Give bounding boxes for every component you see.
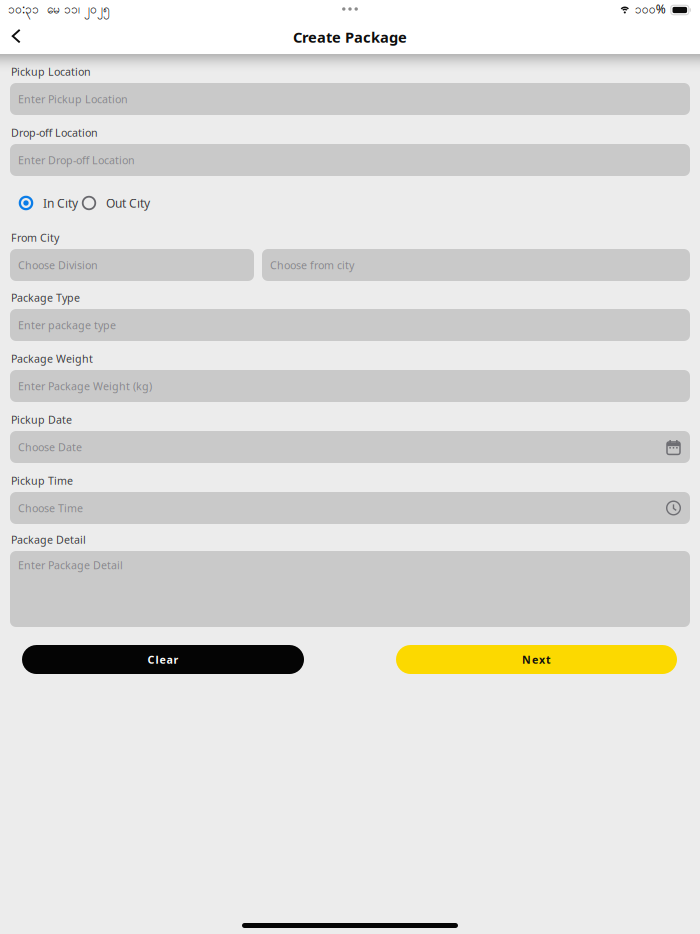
staticText: Choose Division: [18, 258, 98, 272]
staticText: In City: [43, 195, 78, 211]
staticText: Enter Package Detail: [18, 558, 123, 572]
staticText: Clear: [147, 652, 178, 667]
staticText: Enter Drop-off Location: [18, 153, 135, 167]
button[interactable]: Enter Drop-off Location: [10, 144, 690, 176]
staticText: ၁၀:၃၁ မေ ၁၁၊ ၂၀၂၅: [8, 1, 110, 19]
staticText: Enter Pickup Location: [18, 92, 128, 106]
staticText: ၁၀၀%: [635, 1, 666, 19]
button[interactable]: Next: [396, 645, 677, 674]
button[interactable]: Choose Division: [10, 249, 254, 281]
staticText: Pickup Time: [11, 473, 73, 488]
button[interactable]: Choose Time: [10, 492, 690, 524]
button[interactable]: Enter package type: [10, 309, 690, 341]
staticText: Next: [522, 652, 551, 667]
button[interactable]: Enter Pickup Location: [10, 83, 690, 115]
button[interactable]: Out City: [82, 194, 150, 212]
staticText: Package Type: [11, 290, 80, 305]
staticText: Choose Date: [18, 440, 82, 454]
button[interactable]: Enter Package Detail: [10, 551, 690, 627]
button[interactable]: Back: [2, 22, 32, 52]
staticText: Enter Package Weight (kg): [18, 379, 152, 393]
button[interactable]: Choose Date: [10, 431, 690, 463]
button[interactable]: Clear: [22, 645, 304, 674]
button[interactable]: Choose from city: [262, 249, 690, 281]
staticText: Choose Time: [18, 501, 83, 515]
button[interactable]: Enter Package Weight (kg): [10, 370, 690, 402]
staticText: Pickup Date: [11, 412, 72, 427]
staticText: Package Detail: [11, 532, 86, 547]
staticText: Choose from city: [270, 258, 354, 272]
staticText: Create Package: [293, 27, 407, 47]
staticText: From City: [11, 230, 59, 245]
staticText: Package Weight: [11, 351, 93, 366]
staticText: Enter package type: [18, 318, 116, 332]
staticText: Drop-off Location: [11, 125, 98, 140]
staticText: Out City: [106, 195, 150, 211]
staticText: Pickup Location: [11, 64, 91, 79]
button[interactable]: In City: [19, 194, 78, 212]
